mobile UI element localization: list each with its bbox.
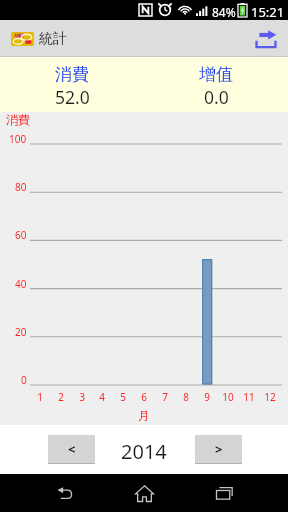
staticText: 0: [21, 373, 27, 387]
staticText: 增值: [199, 64, 233, 85]
button[interactable]: Recents: [194, 474, 254, 512]
staticText: 52.0: [55, 85, 90, 109]
staticText: 40: [15, 277, 27, 291]
staticText: 1: [37, 390, 43, 404]
staticText: 7: [162, 390, 168, 404]
button[interactable]: Home: [114, 474, 174, 512]
staticText: 2014: [121, 438, 167, 465]
staticText: 100: [9, 132, 27, 146]
staticText: 15:21: [251, 3, 285, 21]
staticText: 9: [204, 390, 210, 404]
staticText: 0.0: [204, 85, 229, 109]
staticText: 80: [15, 180, 27, 194]
button[interactable]: Back: [34, 474, 94, 512]
staticText: >: [215, 440, 223, 458]
staticText: 6: [141, 390, 147, 404]
staticText: 消費: [55, 64, 89, 85]
button[interactable]: <: [48, 435, 95, 463]
staticText: 60: [15, 228, 27, 242]
staticText: 3: [79, 390, 85, 404]
staticText: 2: [58, 390, 64, 404]
staticText: 11: [243, 390, 255, 404]
staticText: 12: [264, 390, 276, 404]
staticText: 84%: [212, 4, 236, 20]
button[interactable]: >: [195, 435, 242, 463]
staticText: 10: [222, 390, 234, 404]
staticText: 月: [138, 408, 150, 423]
staticText: 8: [183, 390, 189, 404]
staticText: 4: [99, 390, 105, 404]
staticText: 20: [15, 325, 27, 339]
button[interactable]: Export: [246, 20, 286, 57]
staticText: 消費: [6, 112, 30, 127]
staticText: <: [68, 440, 76, 458]
staticText: 5: [120, 390, 126, 404]
staticText: 統計: [39, 30, 67, 48]
